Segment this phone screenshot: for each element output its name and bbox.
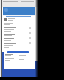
button[interactable]: Menu: [3, 7, 35, 15]
button[interactable]: [7, 51, 29, 53]
button[interactable]: Menu: [4, 8, 8, 12]
button[interactable]: [2, 69, 38, 77]
